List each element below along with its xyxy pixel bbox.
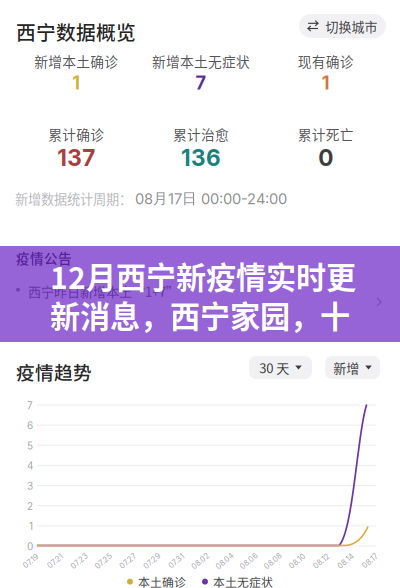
staticText: 本土无症状: [213, 573, 273, 588]
staticText: 08.10: [288, 556, 307, 565]
staticText: 1: [29, 520, 33, 532]
staticText: 08.04: [214, 556, 235, 565]
staticText: 1: [322, 72, 330, 94]
staticText: 07.19: [22, 556, 40, 565]
staticText: 08.02: [190, 556, 211, 565]
staticText: 08.17: [361, 556, 379, 565]
button[interactable]: 30 天: [249, 356, 312, 379]
staticText: 136: [181, 144, 221, 171]
staticText: 累计死亡: [298, 124, 354, 144]
staticText: 4: [27, 460, 33, 472]
staticText: 6: [27, 420, 33, 432]
staticText: 30 天: [259, 358, 289, 377]
staticText: 新增: [333, 358, 359, 377]
button[interactable]: 切换城市: [299, 14, 386, 38]
staticText: 疫情公告: [16, 248, 72, 268]
staticText: 2: [27, 500, 33, 512]
staticText: 7: [27, 399, 33, 412]
staticText: 疫情趋势: [16, 358, 92, 385]
staticText: 08.06: [238, 556, 259, 565]
staticText: 08.08: [263, 556, 284, 565]
staticText: 07.23: [69, 556, 89, 565]
staticText: 07.21: [46, 556, 64, 565]
staticText: 07.25: [94, 556, 114, 565]
staticText: 08.14: [336, 556, 355, 565]
staticText: 新增本土无症状: [152, 51, 250, 71]
staticText: 3: [27, 480, 33, 492]
staticText: 07.27: [118, 556, 137, 565]
staticText: 西宁昨日新增本土“1+7”: [28, 282, 179, 301]
staticText: 本土确诊: [138, 573, 186, 588]
staticText: 0: [318, 144, 333, 171]
staticText: 08.12: [312, 556, 331, 565]
staticText: 137: [57, 144, 95, 171]
staticText: 新增数据统计周期：: [15, 189, 132, 208]
staticText: 07.31: [167, 556, 185, 565]
button[interactable]: 新增: [325, 356, 380, 379]
staticText: 08月17日 00:00-24:00: [135, 189, 287, 208]
staticText: 5: [27, 440, 33, 452]
staticText: 切换城市: [325, 17, 377, 35]
staticText: 累计治愈: [173, 124, 229, 144]
button[interactable]: 12月西宁新疫情实时更: [0, 246, 400, 342]
staticText: 7: [195, 72, 206, 94]
staticText: 12月西宁新疫情实时更: [50, 254, 356, 298]
staticText: 新消息，西宁家园，十: [50, 293, 350, 337]
staticText: 07.29: [142, 556, 162, 565]
staticText: 西宁数据概览: [16, 17, 136, 46]
staticText: 1: [72, 72, 80, 94]
staticText: 现有确诊: [298, 51, 354, 71]
staticText: 累计确诊: [48, 124, 104, 144]
staticText: 0: [27, 540, 33, 553]
staticText: 新增本土确诊: [34, 51, 118, 71]
